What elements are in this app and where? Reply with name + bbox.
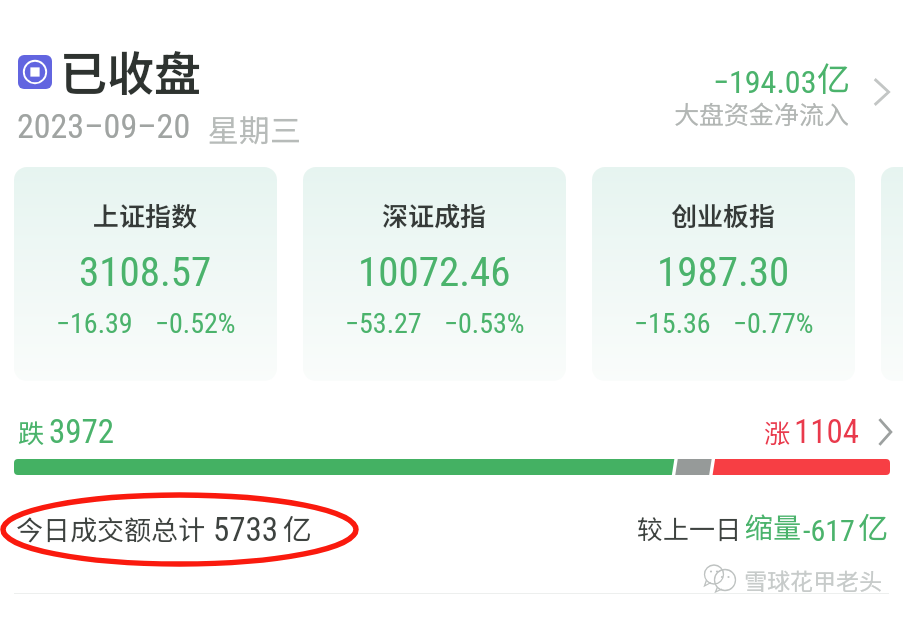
staticText: 缩量	[745, 506, 802, 547]
staticText: 已收盘	[60, 36, 201, 104]
staticText: 雪球花甲老头	[744, 563, 882, 596]
button[interactable]: 深证成指	[303, 167, 566, 381]
staticText: 1987.30	[657, 248, 790, 296]
staticText: 较上一日	[637, 509, 742, 547]
button[interactable]: 创业板指	[592, 167, 855, 381]
staticText: 亿	[283, 506, 313, 548]
staticText: −0.53%	[444, 307, 525, 340]
button[interactable]: 较上一日	[637, 504, 888, 547]
button[interactable]: 今日成交额总计	[16, 506, 313, 548]
button[interactable]: Market closed status	[18, 55, 52, 89]
button[interactable]: 上证指数	[14, 167, 277, 381]
staticText: 10072.46	[358, 248, 511, 296]
staticText: 深证成指	[382, 196, 487, 234]
staticText: 创业板指	[671, 196, 776, 234]
staticText: 涨	[764, 413, 791, 451]
staticText: 大盘资金净流入	[674, 95, 850, 131]
staticText: 跌	[18, 413, 45, 451]
staticText: −194.03	[713, 63, 817, 101]
staticText: -617	[803, 513, 855, 548]
staticText: 2023–09–20	[17, 106, 191, 146]
staticText: −0.77%	[733, 307, 814, 340]
staticText: −0.52%	[155, 307, 236, 340]
staticText: −16.39	[56, 307, 133, 340]
staticText: −53.27	[345, 307, 422, 340]
staticText: 5733	[213, 510, 279, 549]
staticText: 3108.57	[79, 248, 212, 296]
staticText: 上证指数	[93, 196, 198, 234]
staticText: 1104	[794, 412, 860, 451]
staticText: 星期三	[208, 106, 301, 151]
button[interactable]: −194.03	[620, 53, 890, 137]
button[interactable]: 跌	[18, 412, 892, 451]
button[interactable]	[881, 167, 903, 381]
staticText: 3972	[49, 412, 115, 451]
staticText: 亿	[858, 504, 888, 547]
staticText: 亿	[817, 53, 850, 101]
staticText: −15.36	[634, 307, 711, 340]
staticText: 今日成交额总计	[16, 509, 205, 548]
